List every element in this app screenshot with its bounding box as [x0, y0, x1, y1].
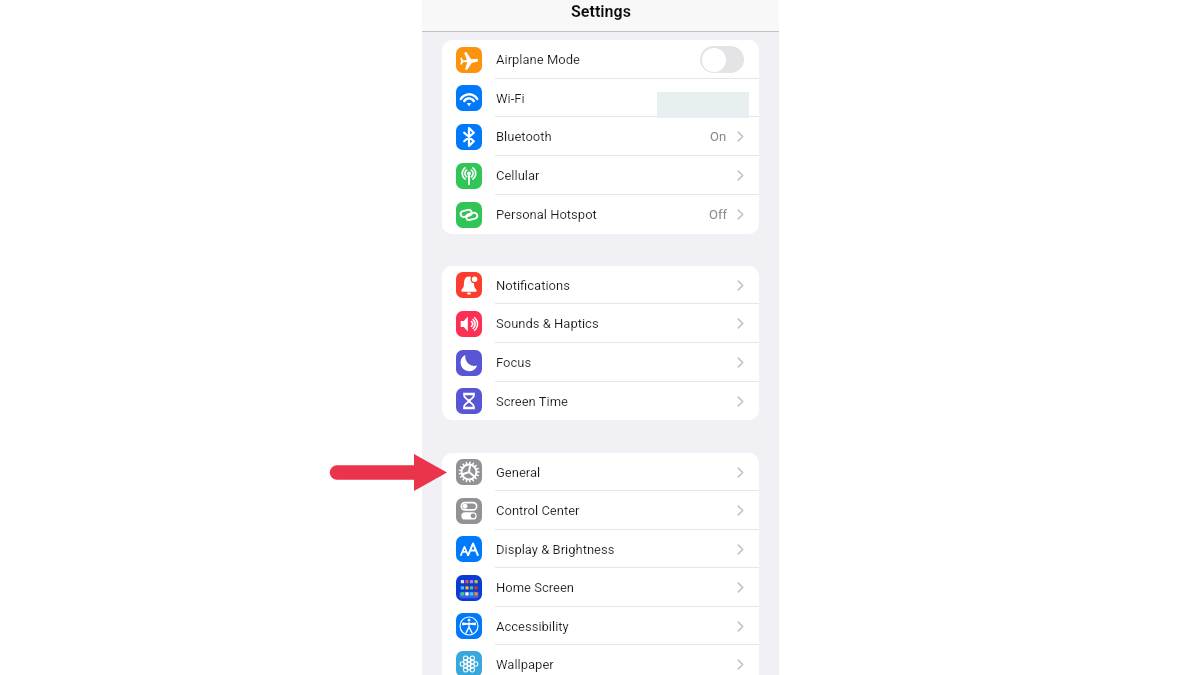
button[interactable]: Screen Time [442, 382, 759, 420]
staticText: Wi-Fi [496, 91, 525, 106]
button[interactable]: Wallpaper [442, 645, 759, 675]
staticText: Settings [571, 2, 631, 21]
staticText: General [496, 465, 541, 480]
staticText: On [710, 129, 727, 144]
staticText: Cellular [496, 168, 540, 183]
staticText: Control Center [496, 503, 580, 518]
staticText: Display & Brightness [496, 542, 615, 557]
button[interactable]: Wi-Fi [442, 79, 759, 117]
staticText: Accessibility [496, 619, 569, 634]
staticText: Off [709, 207, 727, 222]
button[interactable]: General [442, 453, 759, 491]
button[interactable]: Bluetooth [442, 117, 759, 156]
button[interactable]: Control Center [442, 491, 759, 530]
staticText: Airplane Mode [496, 52, 580, 67]
staticText: Wallpaper [496, 657, 554, 672]
staticText: Home Screen [496, 580, 574, 595]
button[interactable]: Personal Hotspot [442, 195, 759, 234]
staticText: Notifications [496, 278, 570, 293]
button[interactable]: Display & Brightness [442, 530, 759, 568]
staticText: Personal Hotspot [496, 207, 597, 222]
button[interactable]: Airplane Mode toggle [700, 46, 744, 73]
button[interactable]: Cellular [442, 156, 759, 195]
button[interactable]: Airplane Mode [442, 40, 759, 79]
staticText: Bluetooth [496, 129, 552, 144]
button[interactable]: Sounds & Haptics [442, 304, 759, 343]
staticText: Screen Time [496, 394, 568, 409]
button[interactable]: Focus [442, 343, 759, 382]
button[interactable]: Home Screen [442, 568, 759, 607]
button[interactable]: Notifications [442, 266, 759, 304]
staticText: Sounds & Haptics [496, 316, 599, 331]
button[interactable]: Accessibility [442, 607, 759, 645]
staticText: Focus [496, 355, 532, 370]
